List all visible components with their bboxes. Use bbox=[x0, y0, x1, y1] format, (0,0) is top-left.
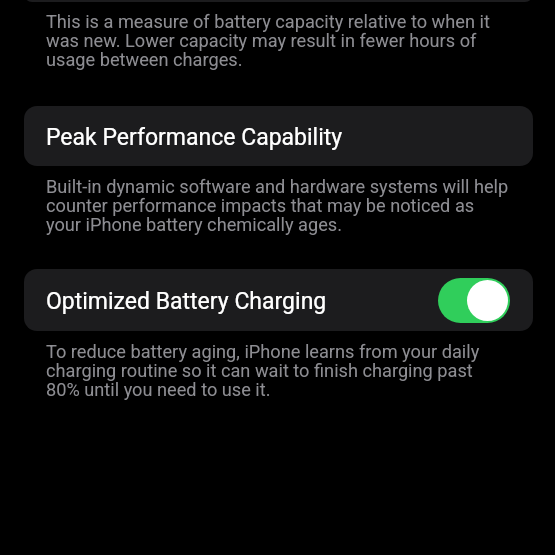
staticText: Built-in dynamic software and hardware s… bbox=[46, 178, 509, 235]
staticText: To reduce battery aging, iPhone learns f… bbox=[46, 343, 509, 400]
button[interactable]: Peak Performance Capability bbox=[24, 106, 533, 166]
button[interactable]: Optimized Battery Charging bbox=[24, 269, 533, 331]
staticText: Peak Performance Capability bbox=[46, 124, 343, 151]
staticText: This is a measure of battery capacity re… bbox=[46, 13, 509, 70]
button[interactable]: Optimized Battery Charging, on bbox=[438, 278, 510, 323]
staticText: Optimized Battery Charging bbox=[46, 288, 327, 315]
